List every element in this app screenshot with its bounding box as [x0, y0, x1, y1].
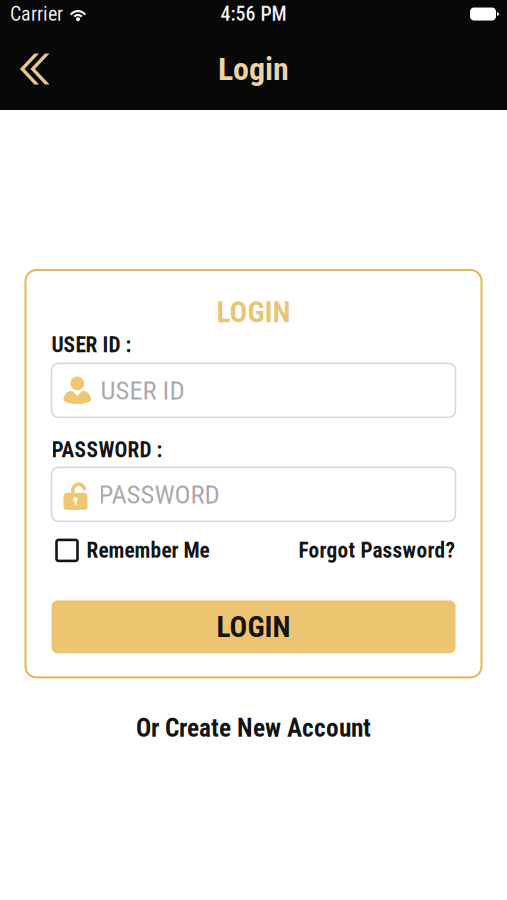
button[interactable]: Back — [0, 37, 70, 101]
staticText: PASSWORD — [98, 479, 219, 510]
staticText: Or Create New Account — [136, 713, 371, 743]
staticText: PASSWORD : — [51, 437, 162, 462]
staticText: USER ID — [100, 375, 184, 406]
staticText: Carrier — [10, 2, 63, 26]
button[interactable]: Remember Me — [51, 538, 209, 563]
staticText: USER ID : — [51, 332, 131, 357]
staticText: 4:56 PM — [220, 2, 286, 26]
button[interactable]: LOGIN — [51, 600, 455, 653]
button[interactable]: Or Create New Account — [124, 705, 383, 751]
button[interactable]: Forgot Password? — [298, 538, 455, 563]
staticText: Forgot Password? — [298, 538, 455, 563]
staticText: Remember Me — [86, 538, 209, 563]
staticText: Login — [218, 50, 289, 88]
staticText: LOGIN — [216, 610, 290, 644]
staticText: LOGIN — [216, 295, 290, 329]
